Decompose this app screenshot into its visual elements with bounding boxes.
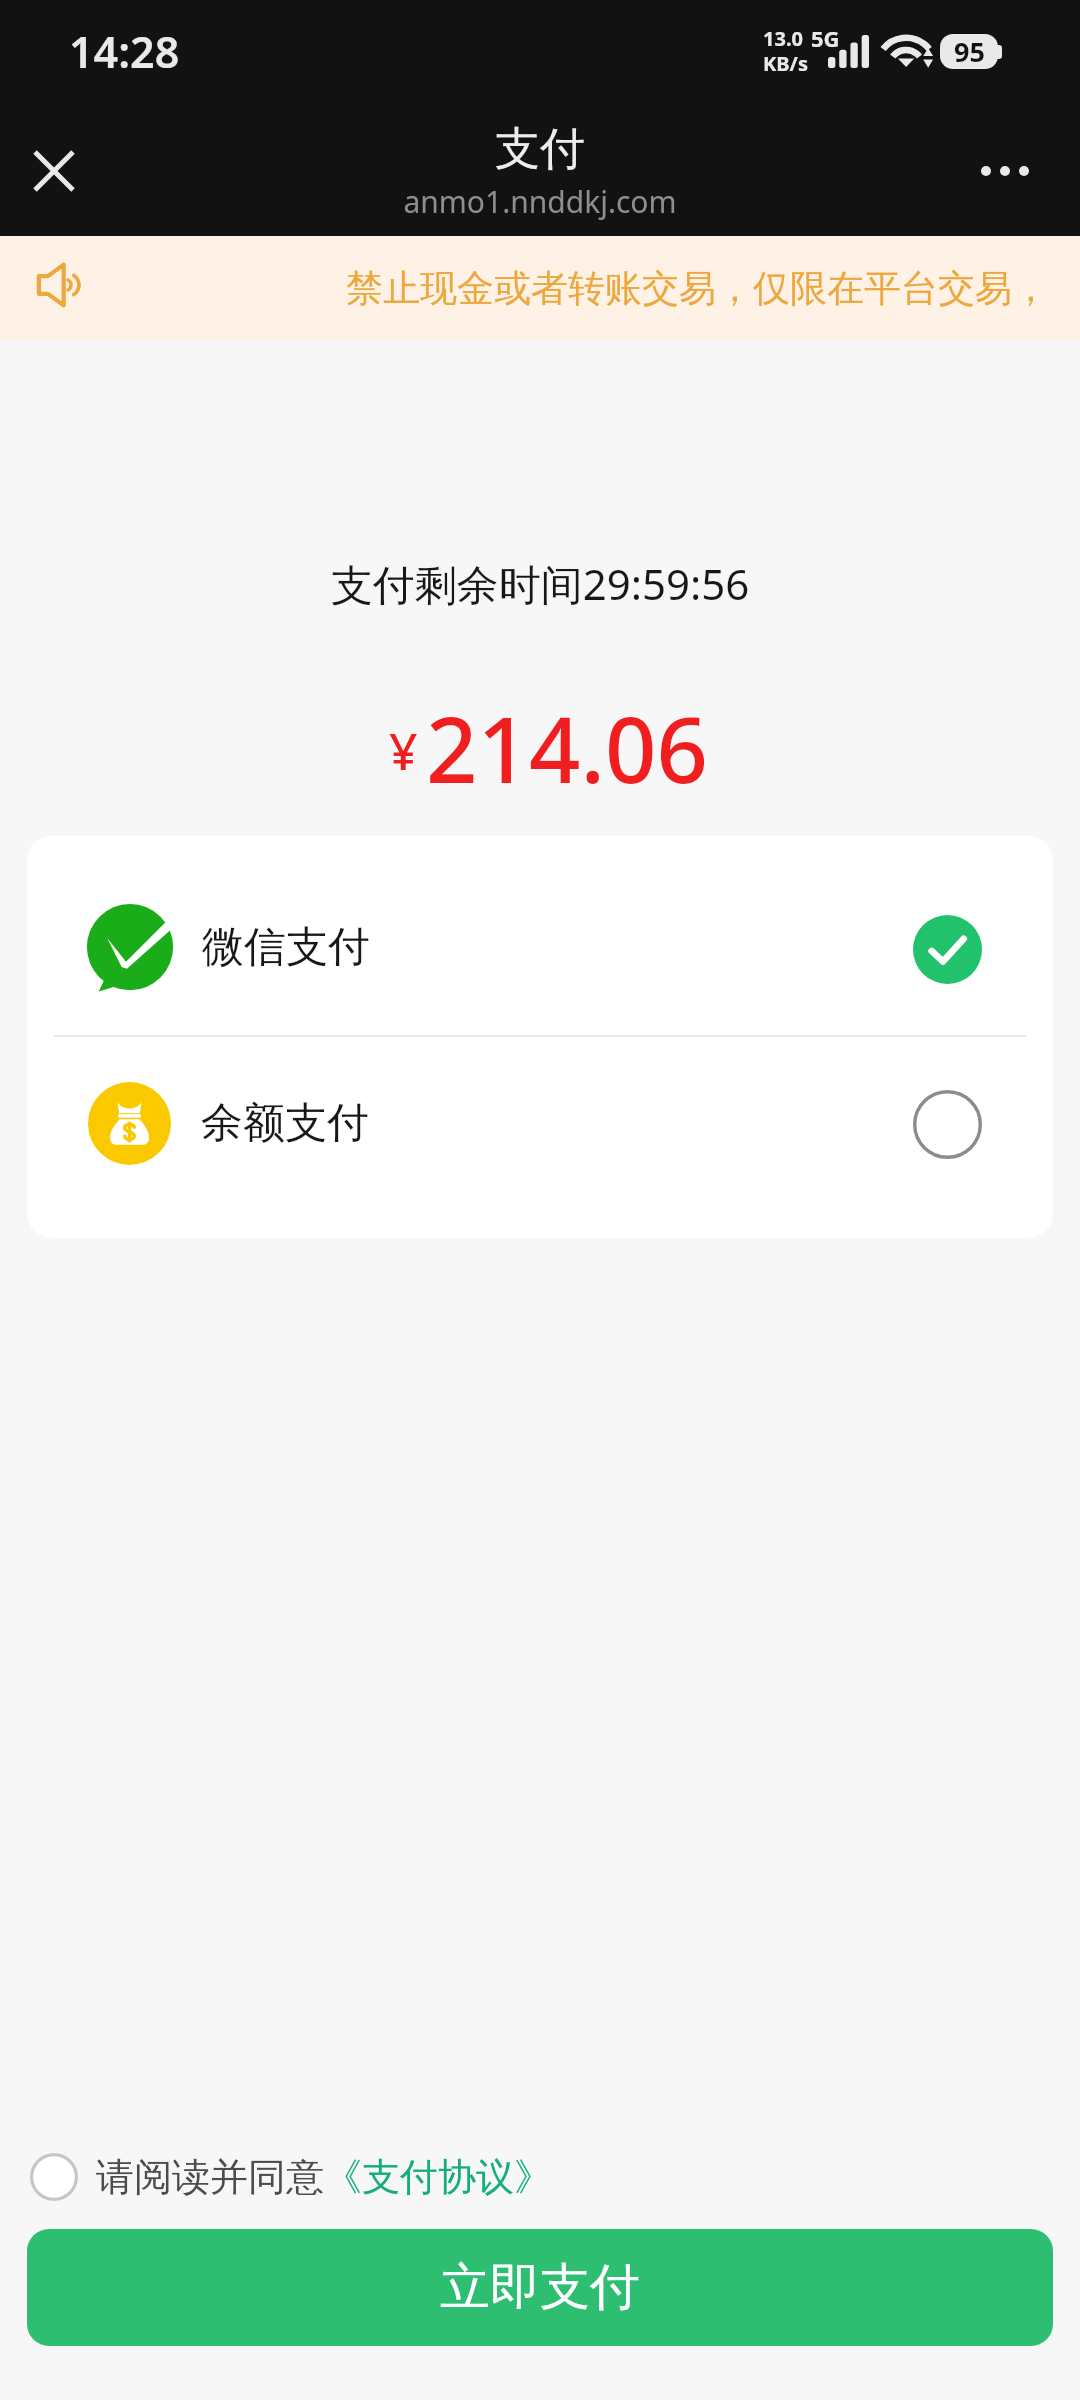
staticText: 立即支付	[440, 2256, 640, 2319]
staticText: 13.0	[763, 25, 803, 52]
button[interactable]: 余额支付	[27, 1037, 1053, 1238]
button[interactable]: 请阅读并同意	[0, 2143, 1080, 2211]
staticText: KB/s	[763, 50, 808, 77]
staticText: 214.06	[426, 687, 708, 810]
staticText: 5G	[811, 23, 840, 53]
staticText: 禁止现金或者转账交易，仅限在平台交易，	[346, 265, 1049, 312]
button[interactable]: Close	[0, 118, 108, 236]
staticText: 支付剩余时间29:59:56	[0, 555, 1080, 612]
button[interactable]: More options	[951, 118, 1059, 236]
staticText: anmo1.nnddkj.com	[0, 181, 1080, 222]
staticText: 余额支付	[201, 1097, 369, 1150]
staticText: 支付	[0, 121, 1080, 178]
staticText: 请阅读并同意	[96, 2153, 324, 2201]
staticText: 微信支付	[202, 921, 370, 974]
button[interactable]: 立即支付	[27, 2229, 1053, 2346]
staticText: 95	[954, 34, 985, 68]
button[interactable]: 微信支付	[27, 836, 1053, 1036]
button[interactable]: 《支付协议》	[324, 2153, 552, 2201]
staticText: 14:28	[69, 22, 180, 81]
staticText: ¥	[389, 717, 418, 785]
